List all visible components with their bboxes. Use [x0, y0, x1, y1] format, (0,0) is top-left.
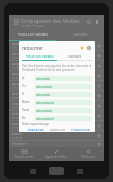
staticText: aimer	[12, 51, 23, 56]
button[interactable]: apporter	[9, 71, 104, 80]
staticText: Conjugaison des Verbes	[21, 17, 80, 24]
staticText: CONJUGUER	[71, 129, 90, 131]
button[interactable]: FAVORIS	[56, 29, 104, 40]
button[interactable]: Nous	[22, 98, 92, 106]
staticText: Tu	[22, 84, 26, 88]
staticText: Verbe apprentissage	[22, 122, 50, 126]
staticText: Préférences	[81, 155, 96, 159]
staticText: Nous	[22, 100, 30, 104]
button[interactable]: PARTAGER	[26, 128, 46, 132]
staticText: avoir	[12, 121, 22, 126]
staticText: to love	[12, 56, 21, 60]
button[interactable]: attendre	[9, 111, 104, 120]
button[interactable]: Vous	[22, 106, 92, 114]
button[interactable]: s'asseoir	[9, 101, 104, 110]
staticText: to have	[12, 126, 22, 130]
button[interactable]: Il	[22, 90, 92, 98]
staticText: ANNULER	[50, 129, 65, 131]
staticText: retournons	[36, 100, 55, 105]
staticText: retourne	[36, 92, 51, 97]
button[interactable]: CONJUGUER	[69, 128, 92, 132]
button[interactable]: apprendre	[9, 81, 104, 90]
button[interactable]: Back	[77, 169, 83, 174]
button[interactable]: avoir	[9, 121, 104, 130]
button[interactable]: Search	[85, 18, 93, 26]
button[interactable]: TOUS LES VERBES	[9, 29, 56, 40]
button[interactable]: Préférences	[72, 147, 104, 161]
staticText: to learn	[12, 86, 23, 90]
button[interactable]: Je	[22, 74, 92, 82]
staticText: boire	[12, 131, 22, 136]
button[interactable]: More options	[93, 18, 101, 26]
staticText: to call	[12, 66, 20, 70]
staticText: to wait	[12, 116, 21, 120]
staticText: retourner	[22, 45, 78, 51]
staticText: to drink	[12, 136, 23, 140]
button[interactable]: ANNULER	[48, 128, 67, 132]
button[interactable]: Tu	[22, 82, 92, 90]
staticText: agir	[12, 41, 20, 46]
staticText: Vous	[22, 108, 30, 112]
staticText: Il	[22, 92, 24, 96]
staticText: TOUS LES VERBES	[18, 32, 48, 37]
button[interactable]: Favorite	[78, 44, 85, 51]
staticText: Apprendre Verbes	[45, 155, 68, 159]
button[interactable]: Tous les verbes	[9, 147, 40, 161]
staticText: FAVORIS	[68, 54, 82, 58]
button[interactable]: boire	[9, 131, 104, 140]
staticText: appeler	[12, 61, 27, 66]
staticText: retournes	[36, 84, 52, 89]
staticText: retournent	[36, 116, 54, 121]
button[interactable]: FAVORIS	[57, 52, 92, 60]
staticText: Je	[22, 76, 25, 80]
button[interactable]: appeler	[9, 61, 104, 70]
staticText: retournez	[36, 108, 52, 113]
staticText: apporter	[12, 71, 29, 76]
staticText: PARTAGER	[28, 129, 44, 131]
staticText: retourne	[36, 76, 51, 81]
button[interactable]: Recents	[30, 169, 36, 174]
button[interactable]: TOUS LES VERBES	[22, 52, 57, 60]
button[interactable]: arriver	[9, 91, 104, 100]
staticText: Ils	[22, 116, 26, 120]
button[interactable]: Ils	[22, 114, 92, 122]
staticText: to arrive	[12, 96, 24, 100]
staticText: to bring	[12, 76, 23, 80]
button[interactable]: agir	[9, 41, 104, 50]
staticText: faire, agir	[12, 46, 25, 50]
staticText: arriver	[12, 91, 25, 96]
staticText: s'asseoir	[12, 101, 29, 106]
button[interactable]: Home	[49, 167, 64, 175]
staticText: Voici les formes conjuguées du verbe ret…	[22, 64, 92, 72]
button[interactable]: chanter	[9, 141, 104, 147]
staticText: Tous les verbes	[15, 155, 34, 159]
staticText: to sit	[12, 106, 19, 110]
staticText: attendre	[12, 111, 29, 116]
staticText: TOUS LES VERBES	[26, 54, 54, 58]
button[interactable]: Menu	[12, 18, 20, 26]
button[interactable]: Apprendre Verbes	[40, 147, 72, 161]
button[interactable]: aimer	[9, 51, 104, 60]
button[interactable]: Settings	[85, 44, 92, 51]
staticText: chanter	[12, 141, 27, 146]
staticText: FAVORIS	[73, 32, 88, 37]
staticText: Verbes Français	[21, 24, 45, 28]
staticText: apprendre	[12, 81, 32, 86]
